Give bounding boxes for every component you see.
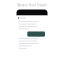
staticText: Talk your Food Insight bbox=[17, 3, 47, 7]
